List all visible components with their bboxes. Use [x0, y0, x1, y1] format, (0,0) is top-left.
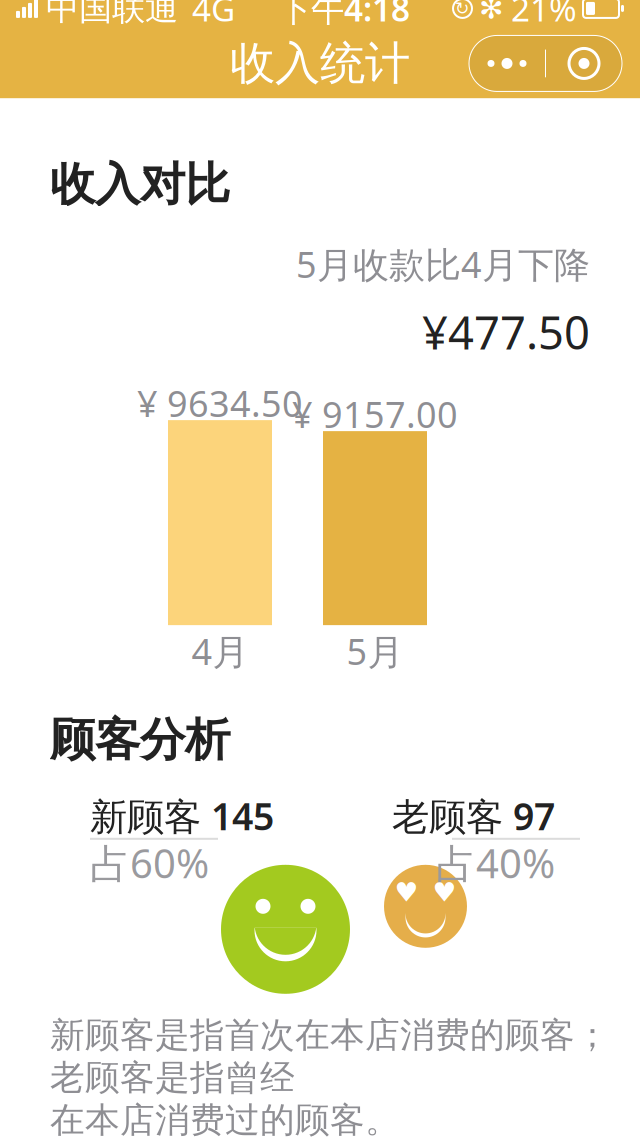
button[interactable]: 更多	[469, 35, 545, 91]
staticText: 21%	[511, 0, 577, 31]
staticText: ♥	[432, 877, 456, 907]
staticText: ↻	[455, 0, 470, 18]
staticText: 4G	[192, 0, 235, 31]
staticText: 4月	[191, 627, 248, 675]
staticText: 占40%	[436, 836, 555, 889]
staticText: ✻	[479, 0, 504, 25]
staticText: ¥477.50	[422, 302, 590, 362]
staticText: 5月收款比4月下降	[296, 240, 590, 288]
staticText: 占60%	[90, 836, 209, 889]
staticText: 5月	[346, 627, 403, 675]
staticText: 收入对比	[50, 156, 230, 212]
staticText: 下午4:18	[278, 0, 410, 31]
button[interactable]: 关闭	[546, 35, 622, 91]
staticText: 收入统计	[230, 36, 410, 91]
staticText: 老顾客 97	[392, 791, 555, 841]
staticText: ♥	[394, 877, 418, 907]
staticText: 中国联通	[46, 0, 178, 29]
staticText: 新顾客 145	[90, 791, 274, 841]
staticText: 新顾客是指首次在本店消费的顾客；老顾客是指曾经 在本店消费过的顾客。	[50, 1014, 610, 1138]
staticText: ¥ 9634.50	[137, 379, 303, 427]
staticText: 顾客分析	[50, 712, 230, 768]
staticText: ¥ 9157.00	[292, 390, 458, 438]
